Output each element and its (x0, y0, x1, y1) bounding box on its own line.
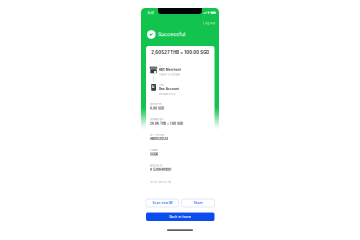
staticText: Exchange rate (150, 118, 163, 121)
button[interactable]: Scan new QR (146, 199, 179, 207)
staticText: Back to home (169, 215, 191, 219)
staticText: AB01231234 (150, 137, 168, 141)
button[interactable]: Share (182, 199, 215, 207)
staticText: 26.06 THB = 1.00 SGD (150, 122, 183, 125)
staticText: ABC Merchant (159, 68, 181, 71)
staticText: xxx-xxxxx-8 SGD (159, 93, 176, 95)
button[interactable]: Back to home (146, 212, 214, 221)
staticText: 9 5206401001 (150, 168, 171, 171)
staticText: 0.00 SGD (150, 106, 164, 110)
staticText: 9:41 (147, 11, 153, 15)
staticText: Channel (150, 149, 158, 151)
staticText: Successful (158, 31, 185, 37)
staticText: Scan new QR (152, 201, 172, 205)
staticText: Transfer to merchant (159, 73, 180, 76)
staticText: Bill reference (150, 133, 164, 136)
staticText: From (159, 84, 164, 86)
staticText: One Account (159, 87, 179, 91)
staticText: Share (194, 201, 203, 205)
staticText: Service fee (150, 103, 161, 105)
staticText: SGQR (150, 153, 158, 156)
staticText: To (159, 64, 161, 67)
button[interactable]: Log out (199, 20, 215, 26)
staticText: Log out (203, 21, 215, 25)
staticText: 2,605.27 THB = 100.00 SGD (151, 50, 209, 55)
staticText: Reference no. (150, 164, 163, 167)
staticText: 28 Apr 2022 8:15 PM (150, 181, 171, 183)
